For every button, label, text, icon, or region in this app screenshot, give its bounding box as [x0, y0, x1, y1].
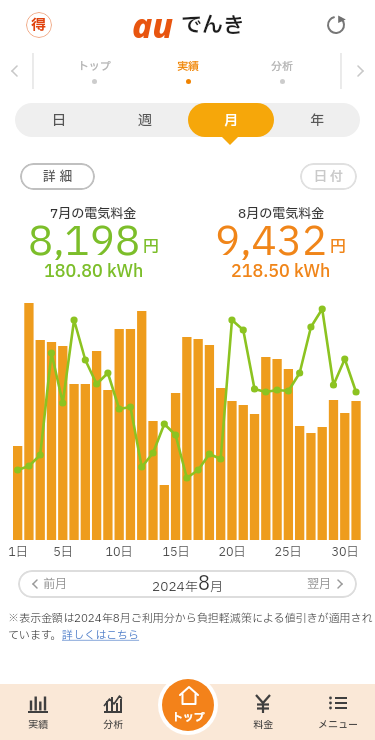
button[interactable]: 得 — [26, 12, 52, 38]
button[interactable]: 年 — [274, 103, 360, 137]
button[interactable]: 前月 — [30, 575, 68, 593]
button[interactable]: トップ — [47, 58, 141, 84]
button[interactable]: 日 付 — [300, 163, 357, 190]
staticText: 20日 — [212, 543, 252, 561]
button[interactable]: トップ — [162, 679, 214, 731]
staticText: ※表示金額は2024年8月ご利用分から負担軽減策による値引きが適用され — [8, 610, 373, 627]
button[interactable]: 詳 細 — [20, 163, 95, 190]
button[interactable]: 月 — [188, 103, 274, 137]
staticText: 実績 — [28, 717, 48, 732]
button[interactable] — [351, 62, 369, 80]
button[interactable]: 日 — [15, 103, 102, 137]
staticText: 円 — [330, 235, 347, 259]
staticText: ています。 — [8, 627, 62, 644]
button[interactable] — [6, 62, 24, 80]
staticText: 218.50 kWh — [231, 259, 331, 284]
staticText: でんき — [181, 10, 244, 41]
button[interactable]: 週 — [102, 103, 188, 137]
button[interactable]: 翌月 — [307, 575, 345, 593]
staticText: 9,432 — [215, 213, 328, 269]
button[interactable]: 料金 — [225, 684, 300, 740]
staticText: 分析 — [103, 717, 123, 732]
staticText: 15日 — [156, 543, 196, 561]
staticText: 翌月 — [307, 575, 332, 593]
staticText: 月 — [210, 577, 224, 596]
staticText: メニュー — [318, 717, 358, 732]
staticText: 年 — [310, 110, 324, 131]
staticText: 円 — [143, 235, 160, 259]
staticText: 分析 — [271, 58, 293, 75]
staticText: 8,198 — [28, 213, 141, 269]
staticText: 7月の電気料金 — [50, 204, 137, 223]
button[interactable]: 実績 — [141, 58, 235, 84]
staticText: 10日 — [99, 543, 139, 561]
staticText: 詳 細 — [43, 167, 73, 186]
button[interactable]: 詳しくはこちら — [62, 627, 140, 644]
button[interactable]: メニュー — [300, 684, 375, 740]
staticText: 得 — [31, 14, 47, 36]
staticText: 2024年 — [152, 577, 198, 596]
staticText: au — [132, 2, 174, 48]
staticText: 料金 — [253, 717, 273, 732]
staticText: 180.80 kWh — [44, 259, 144, 284]
staticText: 実績 — [177, 58, 199, 75]
button[interactable]: 分析 — [235, 58, 329, 84]
staticText: 8月の電気料金 — [238, 204, 325, 223]
staticText: 週 — [138, 110, 152, 131]
staticText: 前月 — [43, 575, 68, 593]
button[interactable] — [325, 14, 347, 36]
button[interactable]: 実績 — [0, 684, 75, 740]
staticText: 1日 — [0, 543, 38, 561]
staticText: 日 — [52, 110, 66, 131]
staticText: 8 — [198, 570, 210, 598]
staticText: 25日 — [268, 543, 308, 561]
staticText: 5日 — [43, 543, 83, 561]
staticText: 月 — [224, 110, 238, 131]
staticText: 日 付 — [314, 167, 344, 186]
button[interactable]: 分析 — [75, 684, 150, 740]
staticText: トップ — [172, 709, 205, 726]
staticText: 30日 — [325, 543, 365, 561]
staticText: トップ — [78, 58, 111, 75]
